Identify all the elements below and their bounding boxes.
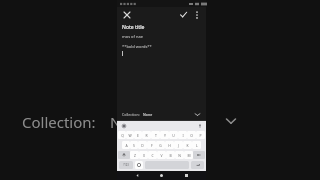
button[interactable]: E xyxy=(134,131,142,139)
staticText: ?123 xyxy=(123,163,129,167)
button[interactable]: S xyxy=(130,141,138,149)
staticText: O xyxy=(190,133,193,138)
staticText: D xyxy=(141,143,144,148)
staticText: Collection: xyxy=(22,112,96,132)
button[interactable]: Enter xyxy=(191,161,204,169)
staticText: I xyxy=(182,133,184,138)
button[interactable]: N xyxy=(175,151,184,159)
staticText: T xyxy=(155,133,157,138)
button[interactable]: H xyxy=(165,141,174,149)
staticText: P xyxy=(199,133,202,138)
staticText: Q xyxy=(121,133,124,138)
button[interactable]: J xyxy=(174,141,183,149)
button[interactable]: Recent apps xyxy=(182,171,191,180)
staticText: **bold words** xyxy=(122,44,152,49)
staticText: Y xyxy=(164,133,166,138)
button[interactable]: M xyxy=(184,151,193,159)
staticText: B xyxy=(169,153,172,158)
button[interactable]: Expand collection xyxy=(222,112,240,130)
staticText: mos of nae xyxy=(122,34,143,39)
button[interactable]: Shift xyxy=(118,151,130,159)
button[interactable]: A xyxy=(122,141,130,149)
button[interactable]: Backspace xyxy=(193,151,205,159)
staticText: A xyxy=(125,143,128,148)
button[interactable]: B xyxy=(166,151,175,159)
button[interactable]: K xyxy=(183,141,192,149)
staticText: U xyxy=(172,133,175,138)
button[interactable]: O xyxy=(187,131,196,139)
staticText: V xyxy=(160,153,163,158)
staticText: No xyxy=(110,112,131,132)
staticText: W xyxy=(128,133,132,138)
button[interactable]: Home xyxy=(157,171,166,180)
button[interactable]: D xyxy=(138,141,147,149)
staticText: None xyxy=(143,112,153,117)
staticText: E xyxy=(137,133,139,138)
staticText: X xyxy=(143,153,145,158)
button[interactable]: Close xyxy=(121,9,132,20)
button[interactable]: P xyxy=(196,131,205,139)
button[interactable]: V xyxy=(157,151,166,159)
staticText: Collection: xyxy=(122,112,140,117)
staticText: Note title xyxy=(122,24,145,31)
button[interactable]: I xyxy=(178,131,187,139)
button[interactable]: ?123 xyxy=(119,161,133,169)
button[interactable]: G xyxy=(156,141,165,149)
staticText: F xyxy=(151,143,153,148)
button[interactable]: X xyxy=(139,151,148,159)
button[interactable]: Emoji xyxy=(135,161,143,169)
staticText: M xyxy=(187,153,191,158)
staticText: J xyxy=(178,143,179,148)
button[interactable]: W xyxy=(126,131,134,139)
staticText: K xyxy=(186,143,189,148)
button[interactable]: Keyboard settings xyxy=(120,122,127,129)
staticText: Z xyxy=(134,153,136,158)
staticText: R xyxy=(145,133,148,138)
staticText: H xyxy=(168,143,171,148)
button[interactable]: T xyxy=(151,131,160,139)
staticText: N xyxy=(178,153,181,158)
staticText: L xyxy=(196,143,198,148)
button[interactable]: U xyxy=(169,131,178,139)
button[interactable]: L xyxy=(192,141,201,149)
button[interactable]: C xyxy=(148,151,157,159)
button[interactable]: More options xyxy=(191,9,202,20)
button[interactable]: Z xyxy=(130,151,139,159)
button[interactable]: Voice input xyxy=(196,122,203,129)
button[interactable]: Collection: xyxy=(117,109,206,120)
button[interactable]: F xyxy=(147,141,156,149)
button[interactable]: Q xyxy=(118,131,126,139)
button[interactable]: Y xyxy=(160,131,169,139)
button[interactable]: R xyxy=(142,131,151,139)
staticText: S xyxy=(133,143,135,148)
button[interactable]: Save note xyxy=(178,9,189,20)
staticText: C xyxy=(151,153,154,158)
button[interactable]: Back xyxy=(133,171,142,180)
staticText: G xyxy=(159,143,162,148)
